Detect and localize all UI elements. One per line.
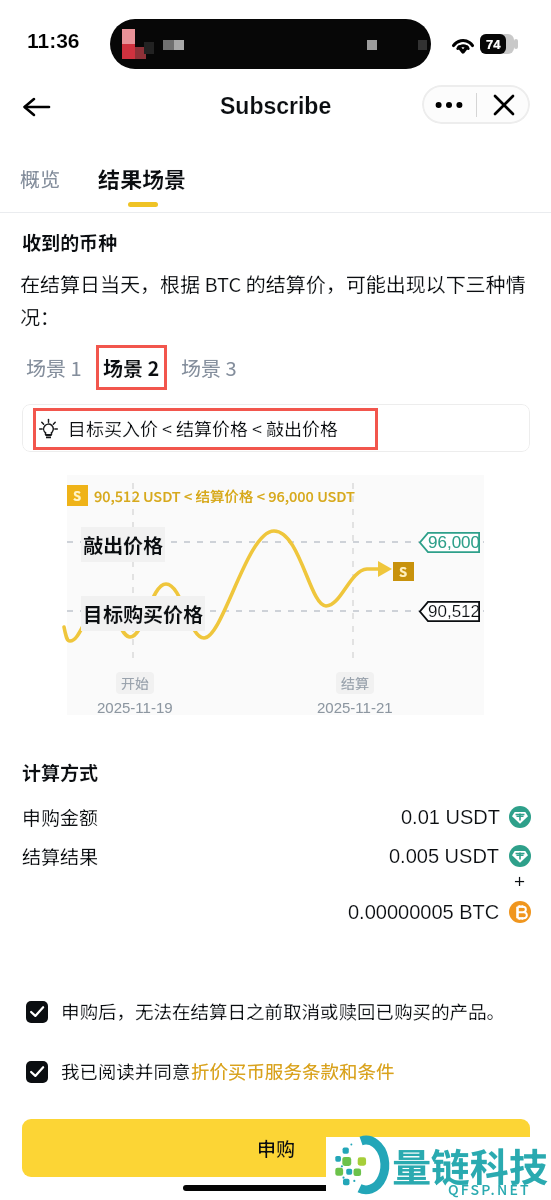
- staticText: 场景 2: [103, 353, 160, 382]
- staticText: 申购: [257, 1134, 296, 1162]
- button[interactable]: 折价买币服务条款和条件: [191, 1058, 395, 1085]
- staticText: QFSP.NET: [448, 1179, 531, 1199]
- button[interactable]: 申购: [22, 1119, 530, 1177]
- staticText: 0.005 USDT: [389, 845, 500, 867]
- staticText: 概览: [20, 164, 60, 193]
- staticText: 目标购买价格: [83, 599, 203, 628]
- staticText: 敲出价格: [83, 530, 163, 559]
- staticText: 结算: [341, 673, 369, 693]
- staticText: 结果场景: [98, 162, 187, 194]
- staticText: +: [514, 871, 526, 892]
- staticText: 11:36: [27, 29, 80, 52]
- staticText: 74: [486, 37, 501, 52]
- button[interactable]: 申购后，无法在结算日之前取消或赎回已购买的产品。: [26, 998, 506, 1025]
- button[interactable]: Close: [477, 85, 530, 124]
- staticText: 收到的币种: [22, 228, 118, 256]
- staticText: Subscribe: [220, 93, 332, 119]
- staticText: 申购金额: [22, 803, 99, 831]
- staticText: 0.00000005 BTC: [348, 901, 500, 923]
- staticText: S: [399, 562, 408, 581]
- button[interactable]: 目标买入价 < 结算价格 < 敲出价格: [22, 404, 530, 452]
- button[interactable]: Back: [13, 84, 59, 130]
- button[interactable]: 概览: [20, 164, 60, 193]
- button[interactable]: 我已阅读并同意: [26, 1058, 395, 1085]
- staticText: 开始: [121, 673, 149, 693]
- button[interactable]: 结果场景: [88, 138, 197, 207]
- staticText: 2025-11-21: [317, 699, 393, 716]
- staticText: S: [73, 486, 82, 505]
- staticText: 96,000: [428, 533, 480, 552]
- staticText: 结算结果: [22, 842, 99, 870]
- staticText: 在结算日当天，根据 BTC 的结算价，可能出现以下三种情况：: [20, 269, 532, 331]
- staticText: 申购后，无法在结算日之前取消或赎回已购买的产品。: [61, 998, 506, 1025]
- button[interactable]: 场景 2: [103, 353, 160, 382]
- button[interactable]: 场景 1: [26, 353, 82, 382]
- staticText: 90,512 USDT < 结算价格 < 96,000 USDT: [94, 485, 355, 506]
- staticText: 90,512: [428, 602, 480, 621]
- staticText: 计算方式: [22, 758, 99, 786]
- staticText: 我已阅读并同意: [61, 1058, 191, 1085]
- button[interactable]: More options: [422, 85, 476, 124]
- staticText: 目标买入价 < 结算价格 < 敲出价格: [68, 415, 339, 441]
- staticText: 量链科技: [392, 1137, 549, 1193]
- button[interactable]: 场景 3: [181, 353, 237, 382]
- staticText: 场景 1: [26, 353, 82, 382]
- staticText: 0.01 USDT: [401, 806, 500, 828]
- staticText: 场景 3: [181, 353, 237, 382]
- staticText: 2025-11-19: [97, 699, 173, 716]
